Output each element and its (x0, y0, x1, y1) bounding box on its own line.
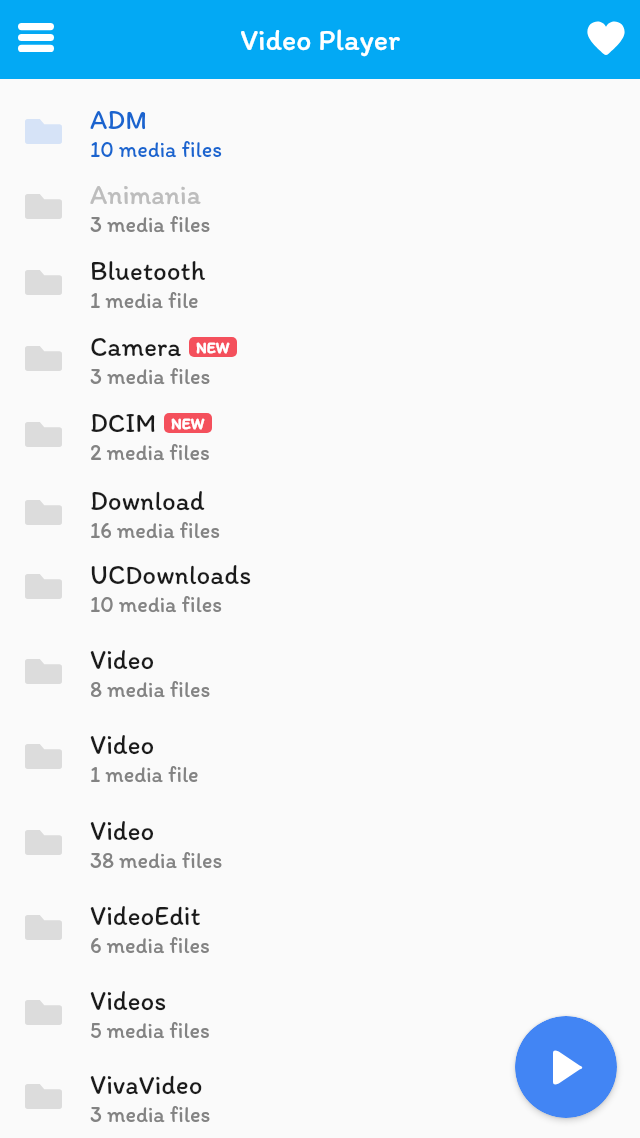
button[interactable]: Video (0, 805, 640, 881)
staticText: 1 media file (90, 761, 199, 787)
button[interactable]: Favorites (575, 8, 634, 70)
staticText: DCIM (90, 406, 157, 438)
staticText: UCDownloads (90, 558, 252, 590)
staticText: 5 media files (90, 1017, 210, 1043)
staticText: NEW (196, 338, 230, 357)
button[interactable]: Camera (0, 321, 640, 397)
button[interactable]: ADM (0, 94, 640, 170)
staticText: 3 media files (90, 211, 211, 237)
staticText: Videos (90, 984, 167, 1016)
button[interactable]: VivaVideo (0, 1059, 640, 1135)
staticText: 1 media file (90, 287, 199, 313)
staticText: Camera (90, 330, 182, 362)
staticText: Video (90, 728, 155, 760)
button[interactable]: DCIM (0, 397, 640, 473)
staticText: Video (90, 814, 155, 846)
button[interactable]: Play (515, 1016, 617, 1118)
staticText: 3 media files (90, 363, 211, 389)
button[interactable]: Video (0, 634, 640, 710)
staticText: Animania (90, 178, 201, 210)
button[interactable]: Videos (0, 975, 640, 1051)
staticText: VivaVideo (90, 1068, 203, 1100)
button[interactable]: VideoEdit (0, 890, 640, 966)
staticText: Bluetooth (90, 254, 206, 286)
staticText: 38 media files (90, 847, 223, 873)
staticText: NEW (171, 414, 205, 433)
button[interactable]: Video (0, 719, 640, 795)
staticText: 10 media files (90, 136, 222, 162)
button[interactable]: Menu (3, 6, 69, 68)
staticText: 2 media files (90, 439, 210, 465)
staticText: 6 media files (90, 932, 210, 958)
button[interactable]: Download (0, 475, 640, 551)
staticText: ADM (90, 103, 147, 135)
staticText: 16 media files (90, 517, 221, 543)
staticText: VideoEdit (90, 899, 201, 931)
staticText: 3 media files (90, 1101, 211, 1127)
button[interactable]: UCDownloads (0, 549, 640, 625)
staticText: Download (90, 484, 205, 516)
button[interactable]: Animania (0, 169, 640, 245)
button[interactable]: Bluetooth (0, 245, 640, 321)
staticText: 8 media files (90, 676, 211, 702)
staticText: Video Player (240, 21, 400, 57)
staticText: 10 media files (90, 591, 222, 617)
staticText: Video (90, 643, 155, 675)
